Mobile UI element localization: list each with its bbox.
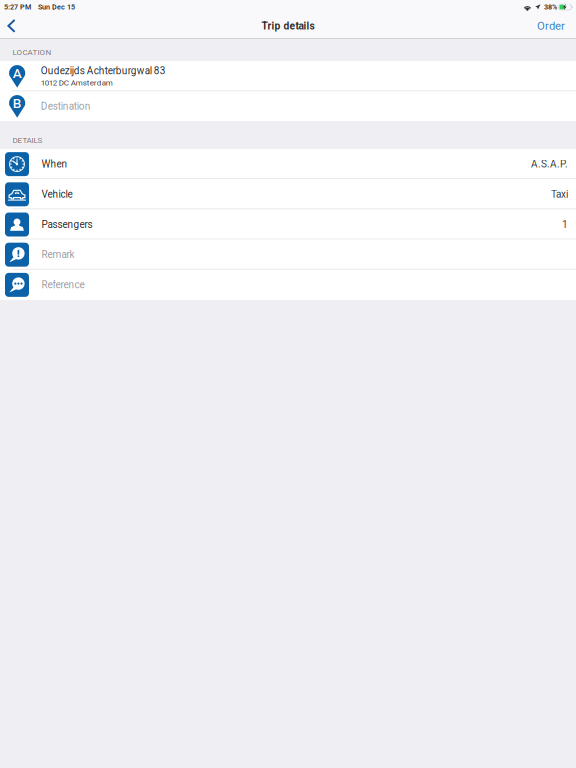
staticText: 1	[562, 219, 568, 230]
staticText: Vehicle	[41, 188, 72, 200]
button[interactable]: Passengers	[0, 209, 576, 240]
button[interactable]: When	[0, 149, 576, 179]
staticText: Destination	[41, 100, 91, 112]
button[interactable]: Remark	[0, 240, 576, 270]
staticText: When	[41, 158, 67, 170]
staticText: DETAILS	[12, 136, 42, 145]
staticText: Taxi	[551, 188, 568, 200]
staticText: 38%	[544, 3, 557, 11]
staticText: Sun Dec 15	[38, 3, 75, 11]
staticText: Trip details	[261, 20, 314, 32]
staticText: Oudezijds Achterburgwal 83	[41, 65, 166, 77]
staticText: B	[13, 95, 22, 111]
staticText: 1012 DC Amsterdam	[41, 78, 113, 88]
staticText: Order	[537, 19, 565, 33]
staticText: Remark	[41, 249, 74, 260]
staticText: 5:27 PM	[4, 3, 31, 11]
button[interactable]: Order	[524, 14, 576, 38]
button[interactable]: A	[0, 61, 576, 91]
staticText: A	[13, 65, 22, 81]
button[interactable]: Back	[0, 15, 28, 37]
staticText: Reference	[41, 279, 84, 291]
staticText: A.S.A.P.	[531, 158, 568, 170]
button[interactable]: B	[0, 91, 576, 121]
button[interactable]: Reference	[0, 270, 576, 300]
button[interactable]: Vehicle	[0, 179, 576, 209]
staticText: Passengers	[41, 219, 92, 230]
staticText: LOCATION	[12, 48, 51, 57]
